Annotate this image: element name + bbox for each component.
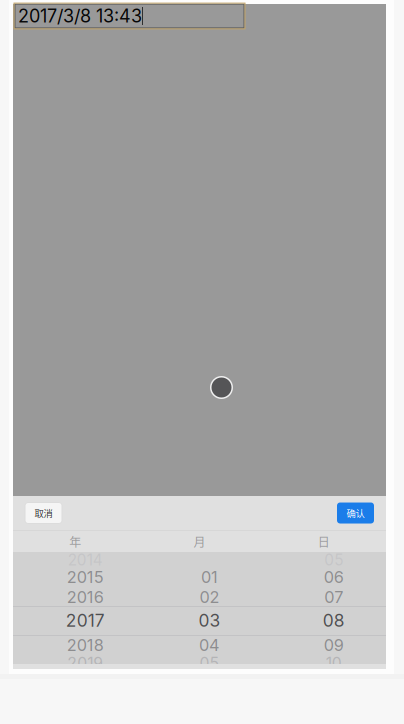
staticText: 2015 [67, 567, 104, 587]
staticText: 08 [323, 610, 345, 631]
button[interactable]: 取消 [25, 502, 62, 523]
staticText: 03 [198, 610, 220, 631]
staticText: 2017/3/8 13:43 [18, 5, 142, 27]
staticText: 2019 [67, 653, 103, 672]
staticText: 取消 [34, 506, 52, 520]
staticText: 05 [199, 653, 219, 672]
staticText: 05 [324, 551, 343, 569]
staticText: 2018 [67, 635, 104, 655]
staticText: 确认 [346, 506, 364, 520]
staticText: 2016 [67, 587, 104, 607]
staticText: 月 [193, 533, 205, 550]
staticText: 日 [318, 533, 330, 550]
staticText: 09 [324, 635, 344, 655]
staticText: 2014 [68, 551, 103, 569]
staticText: 06 [324, 567, 344, 587]
button[interactable]: 确认 [337, 502, 374, 523]
staticText: 07 [324, 587, 343, 607]
staticText: 2017 [66, 610, 105, 631]
staticText: 01 [201, 567, 218, 587]
staticText: 10 [326, 653, 342, 672]
staticText: 02 [199, 587, 219, 607]
staticText: 04 [199, 635, 220, 655]
staticText: 年 [69, 533, 81, 550]
